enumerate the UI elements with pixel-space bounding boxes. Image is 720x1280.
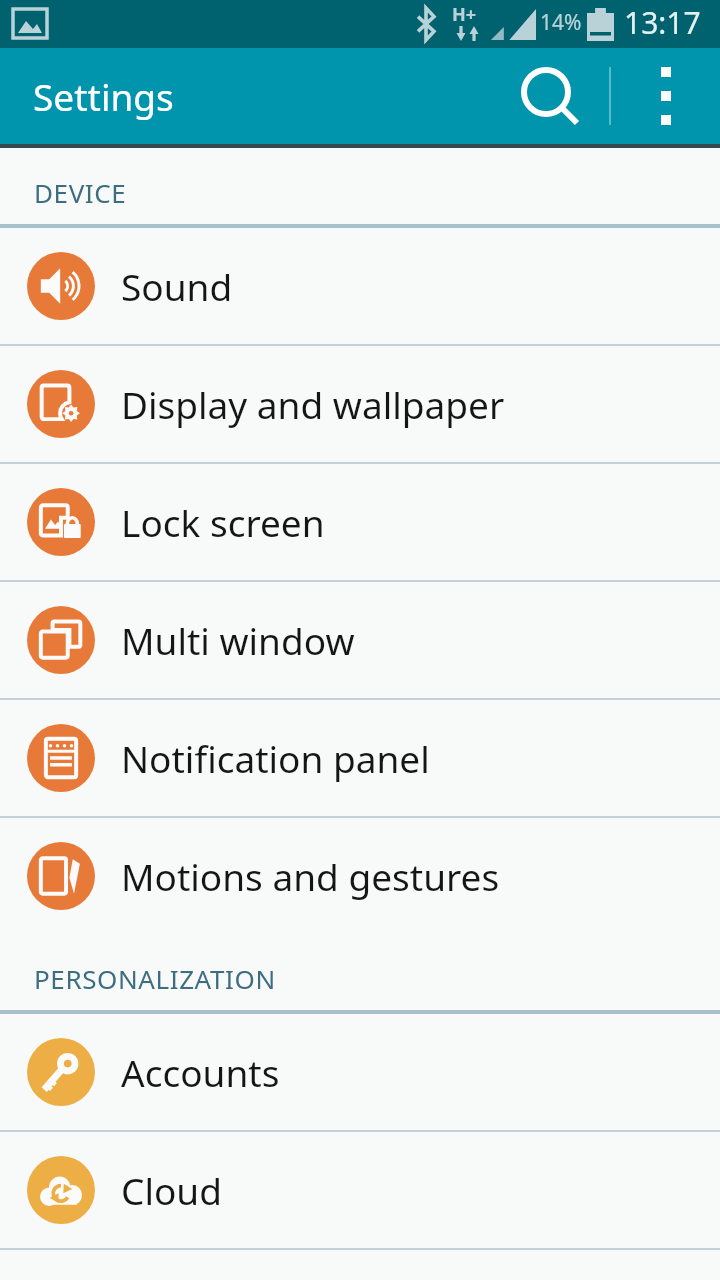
staticText: Motions and gestures — [121, 851, 500, 901]
staticText: Lock screen — [121, 497, 325, 547]
button[interactable]: Motions and gestures — [0, 818, 720, 934]
staticText: 14% — [540, 8, 582, 37]
button[interactable]: Search — [502, 48, 594, 144]
staticText: Settings — [33, 71, 174, 121]
staticText: H+ — [452, 2, 477, 27]
staticText: 13:17 — [624, 2, 701, 43]
staticText: Accounts — [121, 1047, 280, 1097]
button[interactable]: Accounts — [0, 1014, 720, 1130]
button[interactable]: Sound — [0, 228, 720, 344]
staticText: Cloud — [121, 1165, 222, 1215]
button[interactable]: Notification panel — [0, 700, 720, 816]
staticText: Notification panel — [121, 733, 430, 783]
staticText: Multi window — [121, 615, 355, 665]
staticText: Display and wallpaper — [121, 379, 505, 429]
button[interactable]: Multi window — [0, 582, 720, 698]
button[interactable]: More options — [627, 48, 701, 144]
button[interactable]: Lock screen — [0, 464, 720, 580]
button[interactable]: Cloud — [0, 1132, 720, 1248]
staticText: DEVICE — [34, 175, 127, 210]
staticText: PERSONALIZATION — [34, 961, 276, 996]
button[interactable]: Display and wallpaper — [0, 346, 720, 462]
staticText: Sound — [121, 261, 233, 311]
